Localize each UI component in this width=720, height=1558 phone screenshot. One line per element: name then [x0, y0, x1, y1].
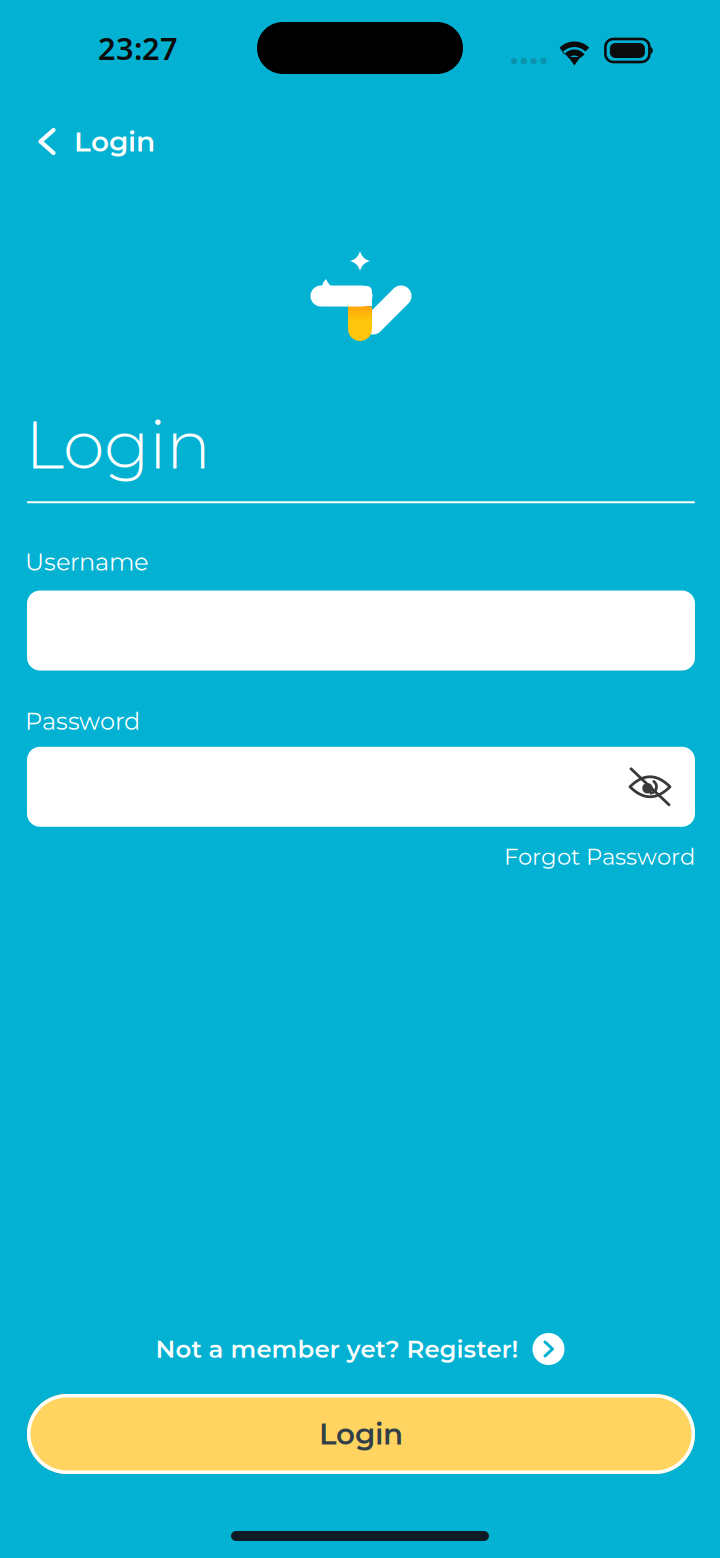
staticText: Not a member yet? Register! [155, 1334, 518, 1364]
staticText: Forgot Password [504, 843, 695, 870]
staticText: Login [25, 404, 211, 485]
staticText: Username [25, 547, 148, 577]
button[interactable]: Forgot Password [504, 836, 695, 877]
staticText: 23:27 [98, 28, 178, 68]
staticText: Login [74, 124, 155, 158]
button[interactable]: Login [38, 112, 155, 167]
button[interactable]: Login [27, 1394, 695, 1474]
button[interactable]: Show password [609, 749, 695, 825]
staticText: Password [25, 706, 140, 736]
button[interactable]: Not a member yet? Register! [155, 1324, 564, 1374]
staticText: Login [319, 1416, 403, 1452]
